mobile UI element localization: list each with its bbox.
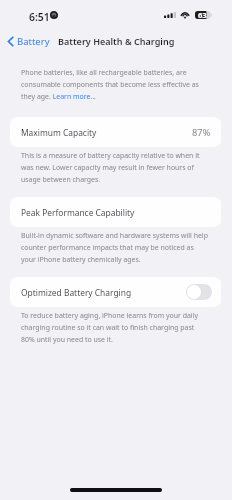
staticText: This is a measure of battery capacity re… (21, 151, 209, 184)
staticText: Phone batteries, like all rechargeable b… (21, 68, 209, 101)
staticText: 63 (198, 10, 207, 20)
staticText: 87% (192, 126, 211, 139)
button[interactable]: Maximum Capacity (10, 117, 221, 147)
staticText: Peak Performance Capability (21, 207, 135, 218)
staticText: Optimized Battery Charging (21, 287, 132, 298)
button[interactable]: Peak Performance Capability (10, 197, 221, 227)
staticText: To reduce battery aging, iPhone learns f… (21, 311, 209, 344)
staticText: Built-in dynamic software and hardware s… (21, 231, 209, 264)
staticText: Maximum Capacity (21, 127, 97, 138)
staticText: Battery (17, 35, 50, 48)
staticText: 6:51 (29, 10, 50, 24)
staticText: Battery Health & Charging (58, 35, 175, 47)
button[interactable]: Optimized Battery Charging, off (186, 284, 212, 300)
button[interactable]: Optimized Battery Charging (10, 277, 221, 307)
button[interactable]: Battery (7, 33, 50, 49)
